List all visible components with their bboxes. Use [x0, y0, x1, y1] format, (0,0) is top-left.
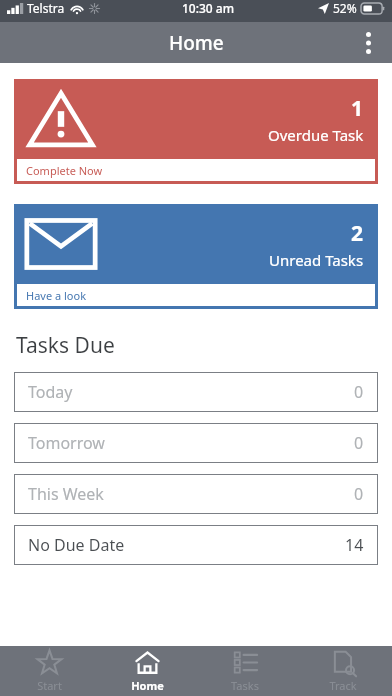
- staticText: 10:30 am: [182, 0, 235, 16]
- button[interactable]: Unread: [14, 204, 378, 309]
- staticText: 0: [354, 483, 364, 505]
- staticText: Telstra: [27, 0, 65, 16]
- button[interactable]: Tomorrow: [14, 423, 378, 463]
- staticText: This Week: [28, 483, 104, 505]
- button[interactable]: This Week: [14, 474, 378, 514]
- staticText: Home: [131, 678, 164, 693]
- staticText: No Due Date: [28, 534, 125, 556]
- staticText: 0: [354, 381, 364, 403]
- staticText: Home: [169, 30, 224, 56]
- button[interactable]: Home: [98, 646, 196, 696]
- button[interactable]: Tasks: [196, 646, 294, 696]
- staticText: Tomorrow: [28, 432, 105, 454]
- button[interactable]: More options: [344, 22, 392, 63]
- staticText: Tasks Due: [16, 331, 115, 360]
- button[interactable]: Overdue: [14, 79, 378, 184]
- staticText: Complete Now: [26, 163, 103, 178]
- staticText: Today: [28, 381, 73, 403]
- staticText: 2: [351, 219, 364, 248]
- staticText: Track: [329, 678, 357, 693]
- staticText: Overdue Task: [268, 125, 364, 145]
- staticText: Unread Tasks: [269, 250, 364, 270]
- staticText: 1: [351, 94, 364, 123]
- button[interactable]: Today: [14, 372, 378, 412]
- staticText: Tasks: [231, 678, 259, 693]
- button[interactable]: Start: [0, 646, 98, 696]
- button[interactable]: No Due Date: [14, 525, 378, 565]
- other: Overdue: [28, 91, 94, 147]
- button[interactable]: Track: [294, 646, 392, 696]
- button[interactable]: Complete Now: [17, 159, 375, 181]
- button[interactable]: Have a look: [17, 284, 375, 306]
- other: Unread: [28, 216, 94, 272]
- staticText: 0: [354, 432, 364, 454]
- staticText: 14: [345, 534, 364, 556]
- staticText: Have a look: [26, 288, 87, 303]
- staticText: Start: [37, 678, 62, 693]
- staticText: 52%: [333, 0, 357, 16]
